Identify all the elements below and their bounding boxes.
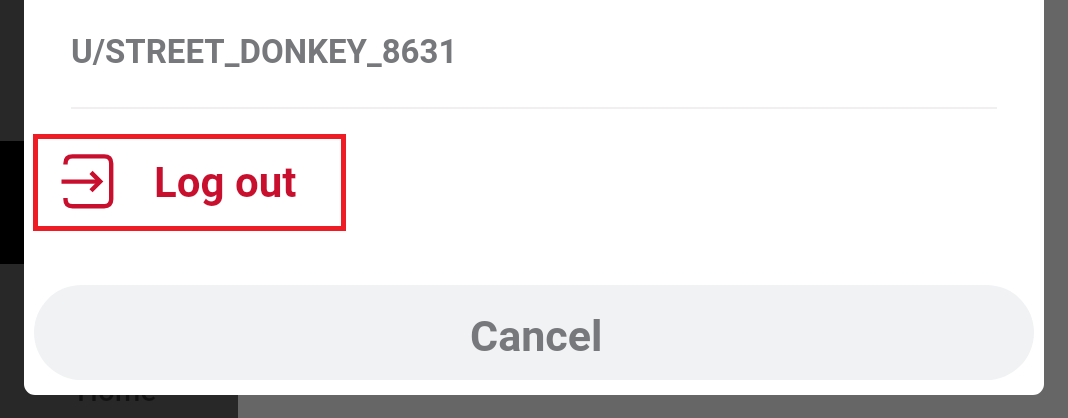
button[interactable]: Cancel (34, 285, 1034, 380)
button[interactable]: U/STREET_DONKEY_8631 (24, 0, 1044, 108)
button[interactable] (0, 380, 238, 418)
staticText: Cancel (470, 311, 603, 361)
staticText: Log out (154, 158, 297, 207)
staticText: Home (77, 374, 157, 409)
other: Log out (61, 154, 113, 208)
staticText: U/STREET_DONKEY_8631 (71, 32, 458, 71)
button[interactable]: Log out (33, 134, 346, 231)
